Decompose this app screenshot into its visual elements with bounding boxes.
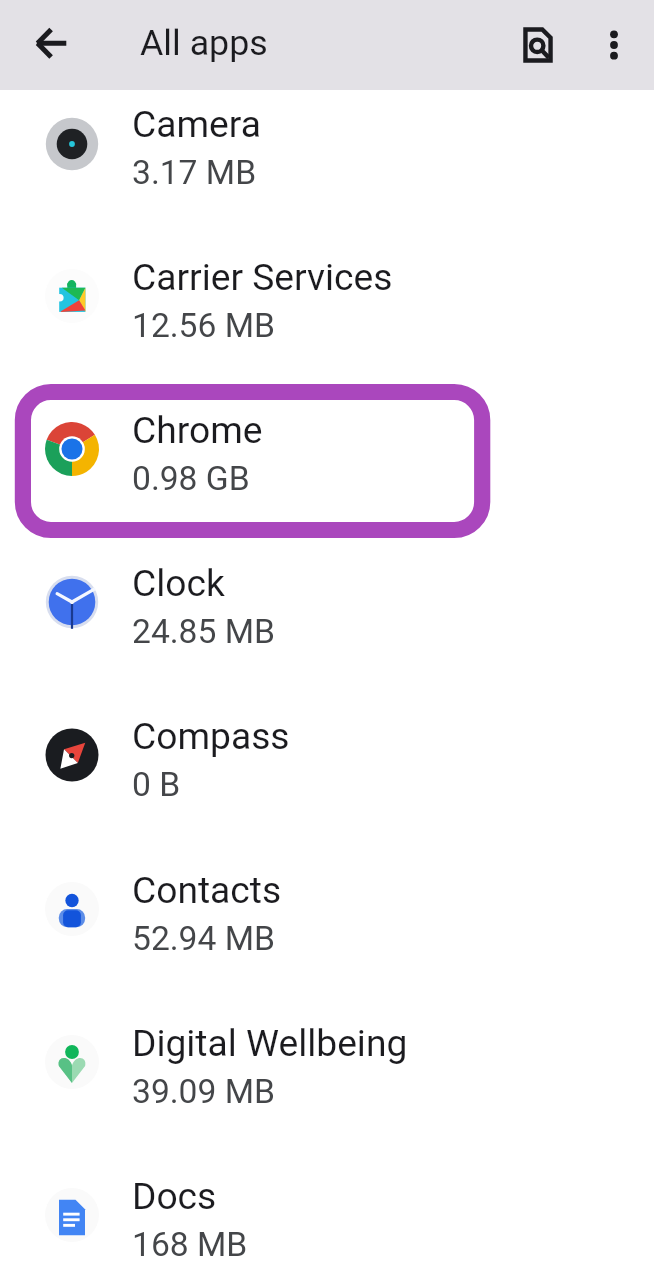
button[interactable]: Camera xyxy=(0,89,654,242)
staticText: 0 B xyxy=(132,765,181,804)
button[interactable]: Docs xyxy=(0,1161,654,1280)
staticText: Contacts xyxy=(132,868,282,912)
staticText: 3.17 MB xyxy=(132,153,257,192)
button[interactable]: Contacts xyxy=(0,855,654,1008)
staticText: 168 MB xyxy=(132,1225,248,1264)
staticText: Camera xyxy=(132,102,261,146)
staticText: 52.94 MB xyxy=(132,919,275,958)
button[interactable]: More options xyxy=(588,19,640,71)
button[interactable]: Compass xyxy=(0,701,654,854)
button[interactable]: Carrier Services xyxy=(0,242,654,395)
staticText: 12.56 MB xyxy=(132,306,275,345)
staticText: Clock xyxy=(132,561,225,605)
staticText: 24.85 MB xyxy=(132,612,275,651)
button[interactable]: Clock xyxy=(0,548,654,701)
button[interactable]: Digital Wellbeing xyxy=(0,1008,654,1161)
button[interactable]: Chrome xyxy=(0,395,654,548)
staticText: Carrier Services xyxy=(132,255,393,299)
button[interactable]: Back xyxy=(21,19,73,71)
staticText: Digital Wellbeing xyxy=(132,1021,408,1065)
staticText: Chrome xyxy=(132,408,263,452)
other: Chrome highlighted xyxy=(10,379,496,543)
staticText: 39.09 MB xyxy=(132,1072,275,1111)
staticText: All apps xyxy=(140,22,268,64)
staticText: Docs xyxy=(132,1174,217,1218)
staticText: 0.98 GB xyxy=(132,459,250,498)
staticText: Compass xyxy=(132,714,290,758)
button[interactable]: Search xyxy=(512,19,564,71)
